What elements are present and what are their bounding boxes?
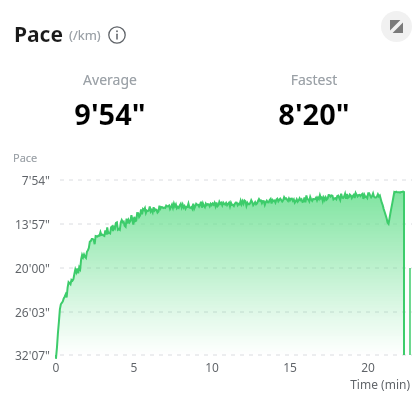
staticText: Fastest [244, 70, 384, 89]
staticText: 10 [197, 359, 227, 375]
other: Info about pace [108, 26, 126, 44]
staticText: 5 [119, 359, 149, 375]
staticText: 13'57" [0, 216, 50, 232]
staticText: 26'03" [0, 304, 50, 320]
staticText: 20'00" [0, 260, 50, 276]
staticText: (/km) [69, 26, 101, 44]
staticText: Average [40, 70, 180, 89]
staticText: 32'07" [0, 347, 50, 363]
staticText: 9'54" [40, 94, 180, 133]
staticText: Pace [13, 150, 38, 165]
staticText: 8'20" [244, 94, 384, 133]
staticText: 20 [353, 359, 383, 375]
staticText: Pace [14, 20, 63, 49]
staticText: 0 [41, 359, 71, 375]
staticText: 7'54" [0, 172, 50, 188]
button[interactable]: Pace over time chart [0, 0, 420, 418]
staticText: Time (min) [320, 376, 410, 392]
staticText: 15 [275, 359, 305, 375]
button[interactable]: Fastest [244, 70, 384, 133]
button[interactable]: Expand chart [381, 11, 412, 42]
button[interactable]: Pace [14, 20, 130, 49]
button[interactable]: Average [40, 70, 180, 133]
